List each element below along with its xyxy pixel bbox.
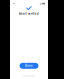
- staticText: 9:41: [12, 3, 15, 4]
- button[interactable]: Done: [19, 63, 38, 69]
- staticText: Done: [25, 64, 33, 67]
- staticText: Email verified: [19, 12, 39, 15]
